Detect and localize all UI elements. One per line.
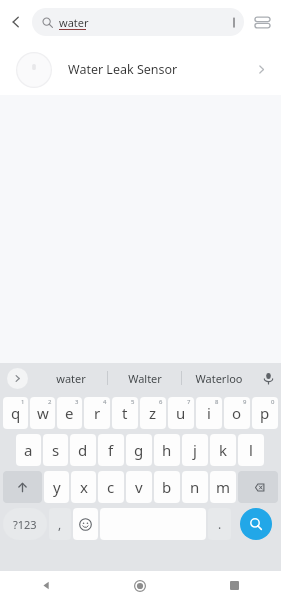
- button[interactable]: Back: [0, 571, 93, 600]
- button[interactable]: f: [98, 434, 124, 466]
- staticText: .: [218, 516, 222, 532]
- staticText: t: [122, 403, 128, 423]
- button[interactable]: Back: [0, 0, 32, 44]
- staticText: 6: [159, 398, 163, 406]
- staticText: 0: [271, 398, 275, 406]
- staticText: 4: [103, 398, 107, 406]
- button[interactable]: q: [3, 397, 28, 429]
- button[interactable]: o: [224, 397, 250, 429]
- button[interactable]: water: [34, 363, 107, 393]
- button[interactable]: z: [140, 397, 166, 429]
- staticText: Waterloo: [195, 371, 243, 386]
- button[interactable]: ?123: [3, 508, 47, 540]
- button[interactable]: Backspace: [238, 471, 278, 503]
- button[interactable]: ,: [49, 508, 71, 540]
- button[interactable]: a: [16, 434, 41, 466]
- button[interactable]: x: [71, 471, 96, 503]
- staticText: ?123: [13, 517, 37, 532]
- staticText: g: [134, 440, 144, 460]
- staticText: Walter: [128, 371, 162, 386]
- button[interactable]: g: [126, 434, 152, 466]
- staticText: m: [216, 477, 231, 497]
- button[interactable]: j: [182, 434, 208, 466]
- staticText: y: [53, 477, 61, 497]
- button[interactable]: More suggestions: [0, 363, 34, 393]
- button[interactable]: b: [154, 471, 180, 503]
- button[interactable]: i: [196, 397, 222, 429]
- button[interactable]: Search: [240, 508, 272, 540]
- button[interactable]: d: [70, 434, 96, 466]
- button[interactable]: u: [168, 397, 194, 429]
- button[interactable]: m: [210, 471, 236, 503]
- button[interactable]: Shift: [3, 471, 42, 503]
- button[interactable]: n: [182, 471, 208, 503]
- staticText: c: [107, 477, 115, 497]
- staticText: e: [65, 403, 74, 423]
- staticText: i: [207, 403, 211, 423]
- staticText: d: [78, 440, 88, 460]
- staticText: a: [24, 440, 33, 460]
- button[interactable]: t: [112, 397, 138, 429]
- staticText: z: [149, 403, 157, 423]
- button[interactable]: y: [44, 471, 69, 503]
- staticText: water: [59, 15, 89, 30]
- button[interactable]: e: [57, 397, 82, 429]
- staticText: n: [190, 477, 200, 497]
- staticText: 9: [243, 398, 247, 406]
- button[interactable]: p: [252, 397, 278, 429]
- staticText: ,: [58, 516, 62, 532]
- staticText: s: [52, 440, 60, 460]
- staticText: h: [162, 440, 172, 460]
- staticText: water: [56, 371, 86, 386]
- button[interactable]: Home: [93, 571, 187, 600]
- staticText: x: [80, 477, 88, 497]
- staticText: k: [219, 440, 228, 460]
- button[interactable]: l: [238, 434, 264, 466]
- staticText: 8: [215, 398, 219, 406]
- staticText: q: [11, 403, 21, 423]
- staticText: w: [37, 403, 49, 423]
- button[interactable]: Recent apps: [187, 571, 281, 600]
- button[interactable]: water: [32, 8, 244, 36]
- staticText: 7: [187, 398, 191, 406]
- button[interactable]: Voice input: [255, 363, 281, 393]
- button[interactable]: c: [98, 471, 124, 503]
- button[interactable]: r: [84, 397, 110, 429]
- staticText: 5: [131, 398, 135, 406]
- button[interactable]: Waterloo: [182, 363, 255, 393]
- staticText: o: [232, 403, 242, 423]
- button[interactable]: w: [30, 397, 55, 429]
- staticText: v: [135, 477, 143, 497]
- staticText: j: [193, 440, 197, 460]
- staticText: Water Leak Sensor: [68, 61, 178, 78]
- staticText: 1: [21, 398, 25, 406]
- button[interactable]: .: [208, 508, 231, 540]
- staticText: r: [94, 403, 101, 423]
- button[interactable]: k: [210, 434, 236, 466]
- button[interactable]: s: [43, 434, 68, 466]
- button[interactable]: v: [126, 471, 152, 503]
- button[interactable]: Water Leak Sensor: [0, 44, 281, 95]
- staticText: p: [260, 403, 270, 423]
- staticText: 2: [48, 398, 52, 406]
- staticText: 3: [75, 398, 79, 406]
- button[interactable]: Scan: [244, 0, 281, 44]
- staticText: u: [176, 403, 186, 423]
- staticText: f: [108, 440, 114, 460]
- button[interactable]: h: [154, 434, 180, 466]
- button[interactable]: Walter: [108, 363, 181, 393]
- staticText: b: [162, 477, 172, 497]
- staticText: l: [249, 440, 253, 460]
- button[interactable]: Emoji: [73, 508, 98, 540]
